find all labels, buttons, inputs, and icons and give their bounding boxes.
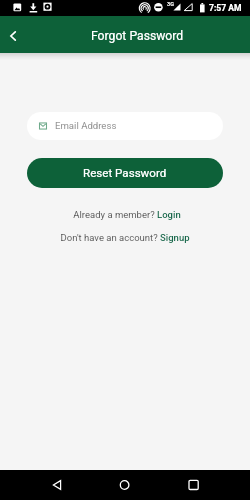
staticText: 3G — [167, 1, 174, 7]
button[interactable]: Don't have an account? Signup — [54, 230, 196, 245]
staticText: Email Address — [55, 120, 117, 131]
staticText: Already a member? Login — [73, 209, 181, 220]
staticText: Reset Password — [83, 166, 167, 180]
button[interactable]: Already a member? Login — [67, 207, 187, 222]
staticText: Forgot Password — [91, 29, 184, 43]
staticText: 7:57 AM — [209, 3, 242, 13]
button[interactable]: Back — [0, 24, 26, 48]
button[interactable]: Email Address — [27, 112, 223, 140]
staticText: Don't have an account? Signup — [60, 232, 190, 243]
button[interactable]: Reset Password — [27, 158, 223, 188]
